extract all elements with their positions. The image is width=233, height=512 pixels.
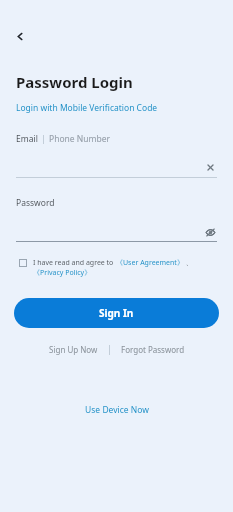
- staticText: I have read and agree to: [33, 258, 116, 268]
- staticText: Login with Mobile Verification Code: [16, 102, 158, 114]
- button[interactable]: Use Device Now: [79, 401, 155, 419]
- staticText: Use Device Now: [85, 404, 149, 416]
- button[interactable]: Agree to terms: [19, 259, 27, 267]
- button[interactable]: Back: [9, 25, 31, 47]
- button[interactable]: Login with Mobile Verification Code: [16, 102, 158, 114]
- staticText: Password Login: [16, 72, 133, 92]
- button[interactable]: 《Privacy Policy》: [33, 268, 92, 278]
- staticText: Forgot Password: [121, 344, 185, 355]
- button[interactable]: Phone Number: [49, 133, 110, 145]
- button[interactable]: Sign Up Now: [45, 342, 102, 357]
- button[interactable]: Clear: [204, 161, 217, 174]
- staticText: 《User Agreement》: [116, 258, 184, 268]
- button[interactable]: Show password: [16, 222, 217, 241]
- staticText: Sign Up Now: [49, 344, 98, 355]
- staticText: Email: [16, 133, 38, 145]
- button[interactable]: 《User Agreement》: [116, 258, 184, 268]
- staticText: 、: [184, 258, 193, 268]
- button[interactable]: Show password: [203, 225, 217, 239]
- button[interactable]: Clear: [16, 158, 217, 177]
- button[interactable]: Forgot Password: [117, 342, 189, 357]
- staticText: Phone Number: [49, 133, 110, 145]
- staticText: Password: [16, 197, 55, 209]
- staticText: Sign In: [99, 306, 134, 320]
- button[interactable]: Email: [16, 133, 38, 145]
- staticText: 《Privacy Policy》: [33, 268, 92, 278]
- button[interactable]: Sign In: [14, 298, 219, 328]
